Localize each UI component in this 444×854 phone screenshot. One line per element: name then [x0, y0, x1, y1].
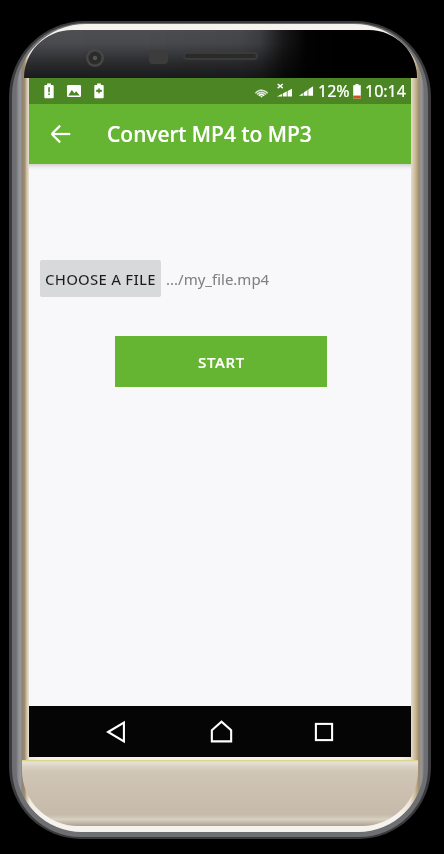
- button[interactable]: Home: [180, 706, 263, 757]
- staticText: START: [198, 352, 245, 372]
- staticText: CHOOSE A FILE: [45, 269, 156, 289]
- staticText: 10:14: [365, 80, 406, 102]
- button[interactable]: Navigate up: [40, 113, 82, 155]
- button[interactable]: START: [115, 336, 327, 387]
- button[interactable]: Recent apps: [282, 706, 365, 757]
- staticText: Convert MP4 to MP3: [107, 120, 312, 149]
- button[interactable]: CHOOSE A FILE: [40, 260, 161, 297]
- staticText: 12%: [318, 80, 350, 102]
- staticText: .../my_file.mp4: [166, 269, 270, 289]
- button[interactable]: Back: [74, 706, 157, 757]
